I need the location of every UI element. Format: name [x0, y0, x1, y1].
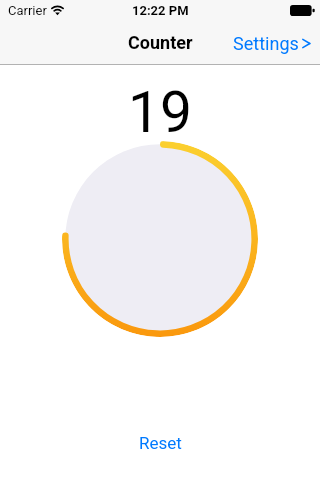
staticText: 19 — [128, 72, 193, 156]
other: Wi-Fi signal — [51, 5, 64, 16]
button[interactable]: Settings — [225, 25, 320, 64]
staticText: 12:22 PM — [132, 1, 189, 20]
button[interactable]: Reset — [0, 430, 320, 456]
staticText: Carrier — [8, 1, 47, 20]
button[interactable]: Increment counter — [62, 141, 258, 337]
staticText: Reset — [139, 431, 182, 456]
other: Battery full — [290, 5, 315, 16]
staticText: Settings — [233, 31, 299, 57]
staticText: Counter — [128, 30, 193, 56]
